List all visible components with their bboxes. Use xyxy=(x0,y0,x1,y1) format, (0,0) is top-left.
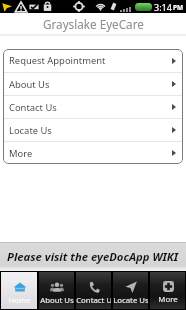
button[interactable]: Request Appointment xyxy=(3,49,183,72)
button[interactable]: More xyxy=(3,142,183,164)
staticText: About Us xyxy=(9,78,50,91)
staticText: Please visit the eyeDocApp WIKI xyxy=(7,249,179,264)
staticText: More xyxy=(158,294,178,305)
button[interactable]: Please visit the eyeDocApp WIKI xyxy=(0,242,186,271)
button[interactable]: Home xyxy=(1,272,37,309)
button[interactable]: More xyxy=(150,272,185,309)
staticText: About Us xyxy=(40,295,74,306)
staticText: More xyxy=(9,147,33,160)
button[interactable]: Contact Us xyxy=(76,272,111,309)
button[interactable]: Locate Us xyxy=(3,119,183,141)
button[interactable]: About Us xyxy=(3,73,183,95)
staticText: Locate Us xyxy=(9,124,52,137)
staticText: Contact Us xyxy=(76,295,111,306)
staticText: Contact Us xyxy=(9,101,57,114)
staticText: Locate Us xyxy=(113,295,148,306)
staticText: 3:14 xyxy=(154,1,172,13)
staticText: Home xyxy=(8,295,31,306)
staticText: PM xyxy=(173,3,184,12)
staticText: Request Appointment xyxy=(9,54,106,67)
button[interactable]: Locate Us xyxy=(113,272,148,309)
staticText: Grayslake EyeCare xyxy=(43,16,144,32)
button[interactable]: About Us xyxy=(39,272,74,309)
button[interactable]: Contact Us xyxy=(3,96,183,118)
